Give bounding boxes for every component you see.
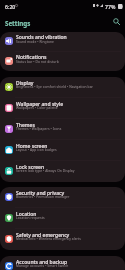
staticText: Home screen [16,143,48,150]
button[interactable]: Location [0,208,125,229]
button[interactable]: Sounds and vibration [0,32,125,52]
staticText: Status bar • Do not disturb [16,59,59,63]
staticText: 6:20 [5,3,16,10]
staticText: Safety and emergency [16,232,70,239]
staticText: Screen lock type • Always On Display [16,168,75,172]
staticText: Accounts and backup [16,259,67,266]
button[interactable]: Security and privacy [0,187,125,208]
staticText: Biometrics • Permission manager [16,194,70,198]
staticText: 77% [105,3,116,10]
button[interactable]: Display [0,77,125,98]
staticText: Location [16,211,37,218]
staticText: Medical info • Wireless emergency alerts [16,236,81,240]
staticText: Lock screen [16,164,45,171]
staticText: Security and privacy [16,190,65,197]
staticText: Display [16,80,34,87]
staticText: Brightness • Eye comfort shield • Naviga… [16,84,94,88]
staticText: Notifications [16,54,47,61]
staticText: Location requests [16,215,45,219]
staticText: Manage accounts • Smart Switch [16,263,69,267]
staticText: Sounds and vibration [16,34,67,41]
staticText: Themes [16,122,35,129]
staticText: Wallpaper and style [16,101,64,108]
staticText: Wallpapers • Color palette [16,105,58,109]
button[interactable]: Notifications [0,52,125,71]
button[interactable]: Lock screen [0,161,125,182]
button[interactable]: Themes [0,119,125,140]
button[interactable]: Wallpaper and style [0,98,125,119]
staticText: Layout • App icon badges [16,147,57,151]
button[interactable]: Safety and emergency [0,229,125,250]
button[interactable]: Search [111,16,122,27]
staticText: Sound mode • Ringtone [16,39,54,43]
button[interactable]: Home screen [0,140,125,161]
staticText: Settings [5,19,31,27]
button[interactable]: Accounts and backup [0,256,125,270]
staticText: Themes • Wallpapers • Icons [16,126,62,130]
